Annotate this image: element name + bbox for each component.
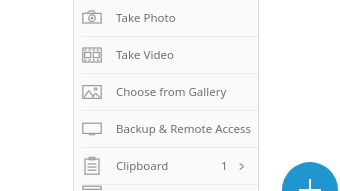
- button[interactable]: Take Video: [73, 37, 259, 73]
- staticText: Backup & Remote Access: [116, 121, 252, 137]
- button[interactable]: Backup & Remote Access: [73, 111, 259, 147]
- staticText: 1: [221, 158, 228, 174]
- staticText: Take Video: [116, 47, 174, 63]
- button[interactable]: Choose from Gallery: [73, 74, 259, 110]
- button[interactable]: Add: [282, 162, 338, 191]
- staticText: Take Photo: [116, 10, 176, 26]
- staticText: Clipboard: [116, 158, 169, 174]
- staticText: Choose from Gallery: [116, 84, 227, 100]
- button[interactable]: [73, 185, 259, 191]
- button[interactable]: Clipboard: [73, 148, 259, 184]
- button[interactable]: Take Photo: [73, 0, 259, 36]
